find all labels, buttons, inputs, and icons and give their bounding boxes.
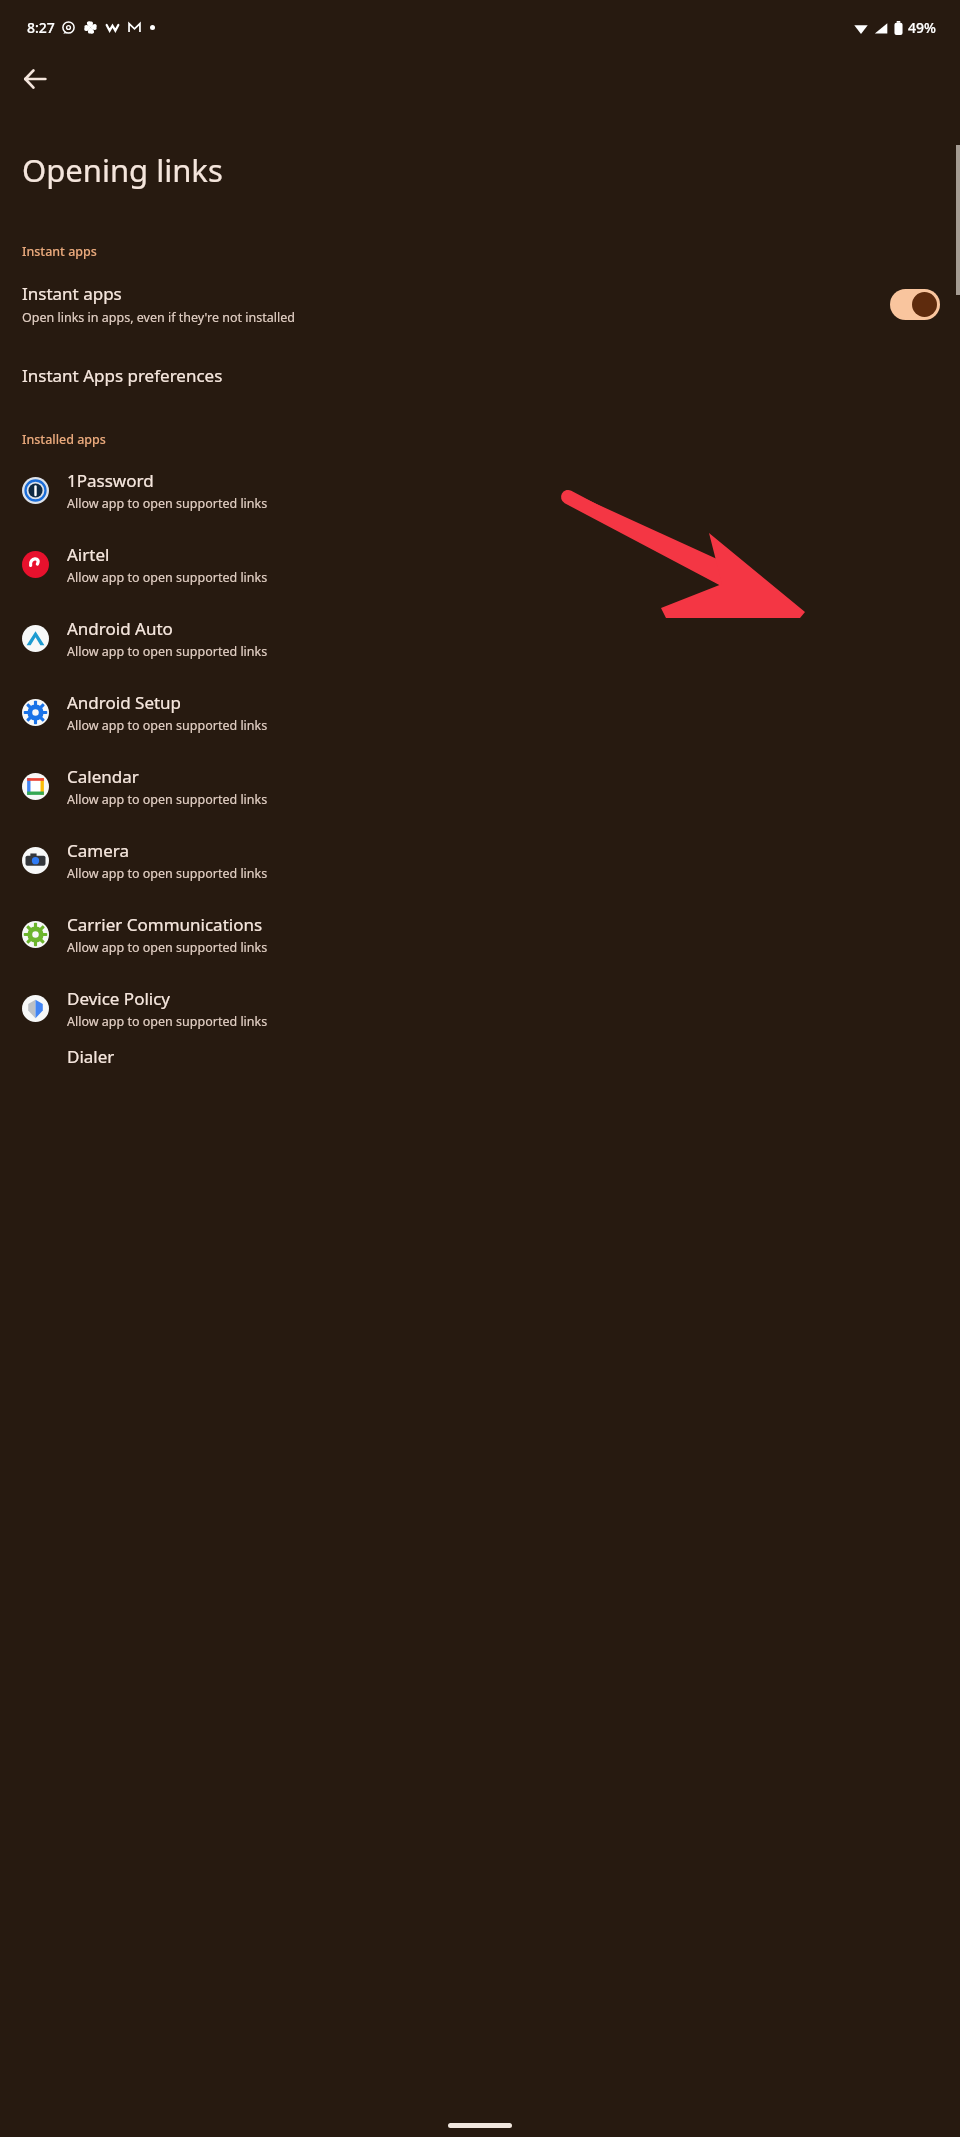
- staticText: Opening links: [22, 149, 223, 191]
- staticText: Android Auto: [67, 617, 173, 640]
- staticText: Allow app to open supported links: [67, 495, 268, 512]
- button[interactable]: Dialer: [0, 1045, 960, 1085]
- staticText: Instant Apps preferences: [22, 364, 223, 387]
- staticText: 49%: [908, 18, 936, 37]
- staticText: Instant apps: [22, 282, 122, 305]
- staticText: Installed apps: [22, 431, 106, 448]
- button[interactable]: Instant Apps preferences: [0, 343, 960, 407]
- staticText: Allow app to open supported links: [67, 791, 268, 808]
- staticText: Carrier Communications: [67, 913, 263, 936]
- staticText: Allow app to open supported links: [67, 939, 268, 956]
- button[interactable]: Calendar: [0, 749, 960, 823]
- staticText: Dialer: [67, 1045, 115, 1068]
- button[interactable]: Instant apps: [0, 265, 960, 343]
- button[interactable]: Android Auto: [0, 601, 960, 675]
- staticText: Open links in apps, even if they're not …: [22, 309, 295, 326]
- button[interactable]: Carrier Communications: [0, 897, 960, 971]
- staticText: Allow app to open supported links: [67, 569, 268, 586]
- button[interactable]: 1Password: [0, 453, 960, 527]
- button[interactable]: Instant apps toggle, on: [890, 289, 940, 320]
- staticText: Calendar: [67, 765, 139, 788]
- staticText: Instant apps: [22, 243, 97, 260]
- button[interactable]: Camera: [0, 823, 960, 897]
- staticText: Allow app to open supported links: [67, 717, 268, 734]
- staticText: Allow app to open supported links: [67, 865, 268, 882]
- staticText: Allow app to open supported links: [67, 643, 268, 660]
- button[interactable]: Back: [11, 55, 59, 103]
- staticText: 8:27: [27, 18, 55, 37]
- staticText: Allow app to open supported links: [67, 1013, 268, 1030]
- button[interactable]: Android Setup: [0, 675, 960, 749]
- staticText: Airtel: [67, 543, 110, 566]
- button[interactable]: Airtel: [0, 527, 960, 601]
- button[interactable]: Device Policy: [0, 971, 960, 1045]
- staticText: Android Setup: [67, 691, 182, 714]
- staticText: Device Policy: [67, 987, 171, 1010]
- staticText: Camera: [67, 839, 129, 862]
- staticText: 1Password: [67, 469, 154, 492]
